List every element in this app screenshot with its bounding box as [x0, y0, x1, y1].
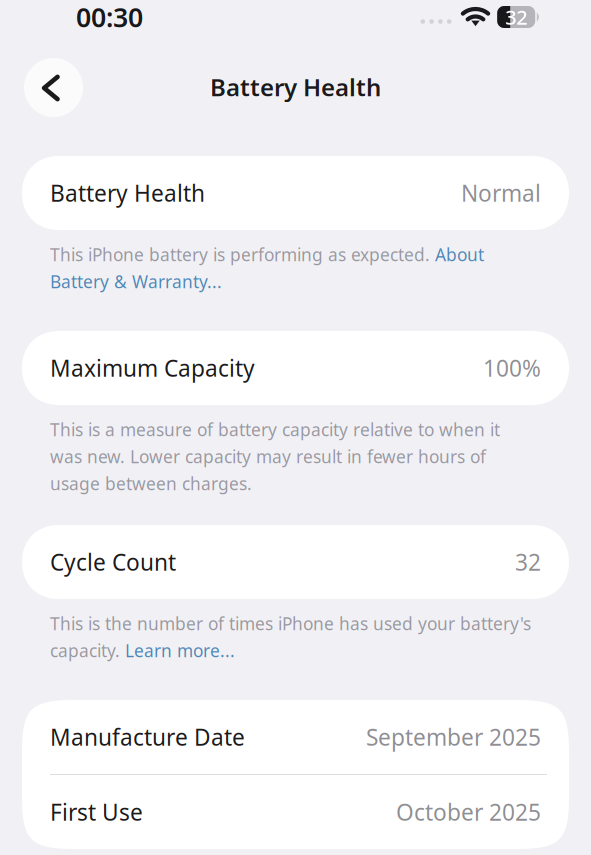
button[interactable]: First Use: [22, 775, 569, 849]
staticText: September 2025: [366, 722, 541, 752]
staticText: Battery Health: [210, 71, 381, 103]
button[interactable]: Maximum Capacity: [22, 331, 569, 405]
staticText: About: [435, 243, 484, 266]
staticText: This iPhone battery is performing as exp…: [50, 243, 435, 266]
button[interactable]: Battery Health: [22, 156, 569, 230]
staticText: Maximum Capacity: [50, 353, 255, 383]
staticText: capacity.: [50, 639, 125, 662]
staticText: This is the number of times iPhone has u…: [50, 612, 531, 635]
staticText: Learn more...: [125, 639, 235, 662]
button[interactable]: Manufacture Date: [22, 700, 569, 774]
staticText: Cycle Count: [50, 547, 176, 577]
staticText: This is a measure of battery capacity re…: [50, 418, 500, 441]
staticText: Manufacture Date: [50, 722, 245, 752]
staticText: October 2025: [396, 797, 541, 827]
staticText: usage between charges.: [50, 472, 252, 495]
staticText: 100%: [483, 353, 541, 383]
button[interactable]: Back: [24, 58, 83, 117]
button[interactable]: Cycle Count: [22, 525, 569, 599]
staticText: 00:30: [76, 0, 143, 35]
staticText: Battery & Warranty...: [50, 270, 222, 293]
staticText: 32: [505, 4, 527, 30]
staticText: 32: [515, 547, 541, 577]
staticText: First Use: [50, 797, 143, 827]
staticText: Normal: [461, 178, 541, 208]
staticText: Battery Health: [50, 178, 205, 208]
staticText: was new. Lower capacity may result in fe…: [50, 445, 486, 468]
